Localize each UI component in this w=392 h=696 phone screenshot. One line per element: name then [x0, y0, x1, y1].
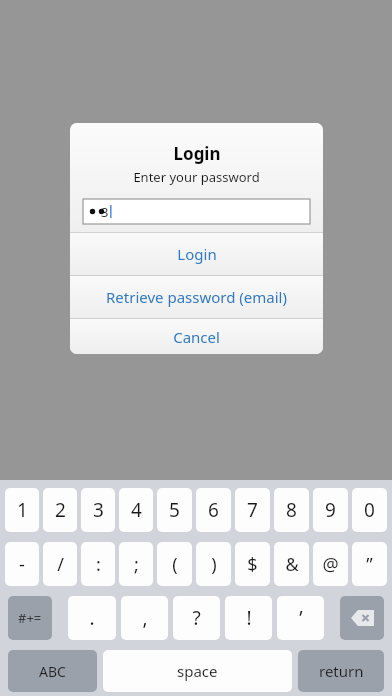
button[interactable]: - [5, 542, 39, 586]
button[interactable]: & [274, 542, 309, 586]
button[interactable]: Password field [83, 199, 310, 224]
button[interactable]: 0 [352, 488, 387, 532]
button[interactable]: ? [173, 596, 220, 640]
staticText: 1 [17, 497, 28, 523]
button[interactable]: 7 [235, 488, 270, 532]
staticText: Retrieve password (email) [106, 287, 287, 307]
staticText: - [19, 552, 25, 577]
staticText: ’ [299, 605, 303, 631]
staticText: 0 [364, 497, 375, 523]
button[interactable]: $ [235, 542, 270, 586]
staticText: 8 [286, 497, 297, 523]
button[interactable]: ’ [277, 596, 324, 640]
button[interactable]: Login [70, 233, 323, 275]
staticText: & [285, 552, 299, 577]
staticText: 9 [325, 497, 336, 523]
button[interactable]: 6 [196, 488, 231, 532]
staticText: #+= [18, 609, 42, 627]
staticText: . [89, 605, 95, 631]
staticText: ? [192, 605, 201, 631]
staticText: ” [366, 552, 373, 577]
button[interactable]: #+= [8, 596, 52, 640]
staticText: 2 [55, 497, 66, 523]
staticText: Enter your password [133, 168, 260, 186]
staticText: , [142, 605, 148, 631]
staticText: ! [246, 605, 252, 631]
staticText: ; [134, 552, 139, 577]
staticText: 4 [131, 497, 142, 523]
button[interactable]: @ [313, 542, 348, 586]
staticText: 3 [101, 203, 109, 221]
button[interactable]: ; [119, 542, 153, 586]
staticText: return [319, 661, 364, 681]
button[interactable]: 9 [313, 488, 348, 532]
staticText: space [177, 661, 218, 681]
button[interactable]: ) [196, 542, 231, 586]
button[interactable]: 3 [81, 488, 115, 532]
button[interactable]: ” [352, 542, 387, 586]
button[interactable]: 8 [274, 488, 309, 532]
button[interactable]: 2 [43, 488, 77, 532]
button[interactable]: return [298, 650, 384, 692]
button[interactable]: Cancel [70, 319, 323, 354]
staticText: / [57, 552, 64, 577]
staticText: Login [177, 244, 217, 264]
button[interactable]: ABC [8, 650, 97, 692]
staticText: $ [247, 552, 258, 577]
button[interactable]: Retrieve password (email) [70, 276, 323, 318]
staticText: Cancel [173, 327, 220, 347]
staticText: 5 [169, 497, 180, 523]
staticText: ( [172, 552, 178, 577]
button[interactable]: Backspace [340, 596, 384, 640]
button[interactable]: 1 [5, 488, 39, 532]
button[interactable]: 5 [157, 488, 192, 532]
staticText: 6 [208, 497, 219, 523]
button[interactable]: ! [225, 596, 272, 640]
staticText: 7 [247, 497, 258, 523]
button[interactable]: : [81, 542, 115, 586]
staticText: @ [322, 552, 339, 577]
staticText: Login [173, 142, 221, 165]
staticText: ABC [39, 662, 66, 681]
button[interactable]: / [43, 542, 77, 586]
button[interactable]: , [121, 596, 168, 640]
button[interactable]: 4 [119, 488, 153, 532]
button[interactable]: . [68, 596, 116, 640]
staticText: : [96, 552, 101, 577]
staticText: ) [211, 552, 217, 577]
button[interactable]: ( [157, 542, 192, 586]
button[interactable]: space [103, 650, 292, 692]
staticText: 3 [93, 497, 104, 523]
